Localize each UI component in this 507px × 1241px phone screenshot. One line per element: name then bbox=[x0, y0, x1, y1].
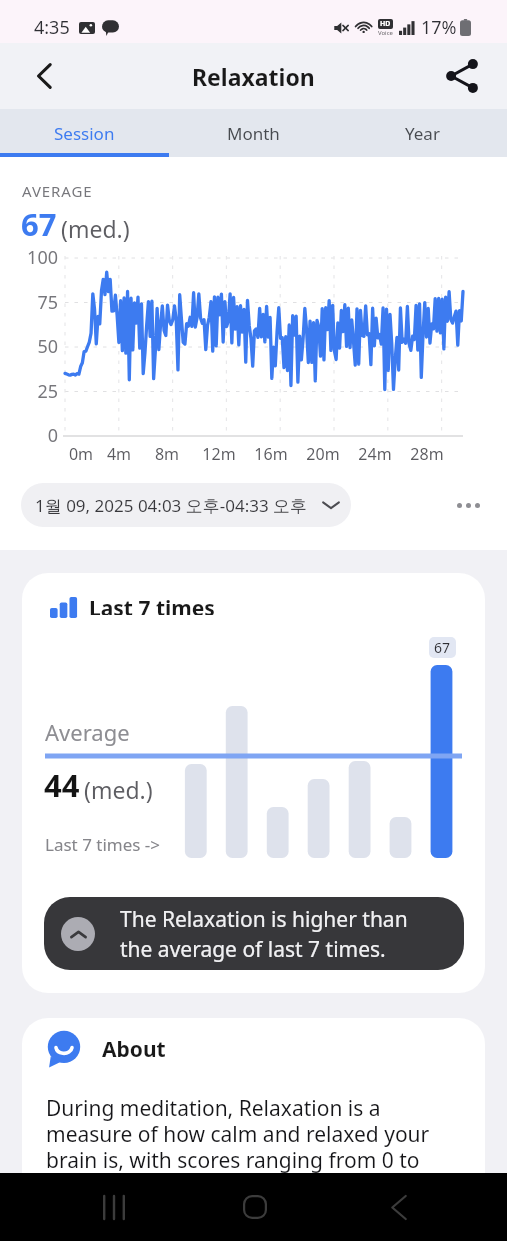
button[interactable]: The Relaxation is higher than the averag… bbox=[44, 897, 464, 970]
staticText: The Relaxation is higher than the averag… bbox=[120, 905, 420, 963]
button[interactable]: 1월 09, 2025 04:03 오후-04:33 오후 bbox=[21, 483, 351, 527]
staticText: Average bbox=[45, 717, 130, 747]
staticText: Voice bbox=[378, 29, 393, 37]
staticText: 67 bbox=[434, 638, 451, 657]
button[interactable]: Home bbox=[215, 1173, 295, 1241]
staticText: HD bbox=[380, 19, 391, 29]
staticText: 17% bbox=[421, 15, 457, 40]
staticText: AVERAGE bbox=[22, 181, 93, 201]
staticText: 8m bbox=[137, 443, 197, 465]
staticText: 67 bbox=[21, 203, 57, 245]
staticText: (med.) bbox=[84, 774, 153, 805]
button[interactable]: Month bbox=[169, 109, 338, 157]
staticText: Last 7 times bbox=[89, 594, 215, 615]
button[interactable]: Recent apps bbox=[74, 1173, 154, 1241]
staticText: 50 bbox=[0, 334, 58, 359]
staticText: 4m bbox=[89, 443, 149, 465]
staticText: 44 bbox=[44, 764, 80, 806]
staticText: During meditation, Relaxation is a measu… bbox=[46, 1094, 465, 1201]
staticText: 0m bbox=[51, 443, 111, 465]
button[interactable]: Year bbox=[338, 109, 507, 157]
staticText: 28m bbox=[397, 443, 457, 465]
button[interactable]: More options bbox=[447, 484, 489, 526]
staticText: 0 bbox=[0, 423, 58, 448]
button[interactable]: Last 7 times -> bbox=[45, 833, 161, 856]
staticText: 25 bbox=[0, 379, 58, 404]
staticText: About bbox=[102, 1035, 166, 1064]
button[interactable]: Share bbox=[439, 53, 485, 99]
staticText: Year bbox=[405, 122, 440, 145]
staticText: Relaxation bbox=[192, 61, 315, 92]
staticText: 24m bbox=[345, 443, 405, 465]
staticText: 75 bbox=[0, 290, 58, 315]
staticText: Session bbox=[54, 122, 115, 145]
staticText: 100 bbox=[0, 245, 58, 270]
button[interactable]: Back bbox=[359, 1173, 439, 1241]
button[interactable]: Navigate up bbox=[21, 53, 67, 99]
staticText: 12m bbox=[189, 443, 249, 465]
staticText: 4:35 bbox=[34, 15, 70, 40]
staticText: (med.) bbox=[61, 213, 130, 244]
staticText: Month bbox=[227, 122, 280, 145]
staticText: 20m bbox=[293, 443, 353, 465]
staticText: 1월 09, 2025 04:03 오후-04:33 오후 bbox=[35, 494, 308, 517]
staticText: 16m bbox=[241, 443, 301, 465]
button[interactable]: Session bbox=[0, 109, 169, 157]
staticText: Last 7 times -> bbox=[45, 833, 161, 856]
